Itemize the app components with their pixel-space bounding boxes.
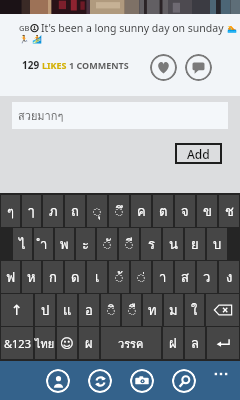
staticText: ง (226, 267, 233, 288)
button[interactable]: ไทย (35, 327, 55, 359)
button[interactable]: Backspace (206, 294, 239, 326)
button[interactable]: Refresh (88, 369, 112, 393)
staticText: ◌ี (125, 234, 133, 255)
button[interactable]: บ (207, 228, 227, 260)
staticText: 🏄 (32, 35, 42, 44)
staticText: ป (41, 300, 50, 321)
staticText: ↑ (11, 302, 23, 318)
staticText: ม (169, 300, 178, 321)
button[interactable]: ↑ (1, 294, 33, 326)
button[interactable]: ◌ุ (87, 195, 107, 227)
staticText: ไ (19, 234, 26, 255)
staticText: เ (95, 267, 100, 288)
button[interactable]: Like (150, 54, 177, 81)
button[interactable]: ผ (79, 327, 99, 359)
button[interactable]: ◌ิ (101, 294, 120, 326)
button[interactable]: ค (131, 195, 151, 227)
button[interactable]: ใ (185, 294, 204, 326)
button[interactable]: ด (65, 261, 85, 293)
button[interactable]: Camera (130, 369, 154, 393)
staticText: อ (85, 300, 93, 321)
staticText: จ (181, 201, 189, 222)
staticText: ว (203, 267, 211, 288)
staticText: ะ (82, 234, 89, 255)
staticText: ๅ (28, 201, 35, 222)
button[interactable]: ม (164, 294, 183, 326)
button[interactable]: เ (87, 261, 107, 293)
staticText: 🏃 (19, 35, 29, 44)
button[interactable]: Search (172, 369, 196, 393)
button[interactable]: น (163, 228, 183, 260)
button[interactable]: ท (143, 294, 162, 326)
button[interactable]: ต (153, 195, 173, 227)
button[interactable]: ๅ (22, 195, 41, 227)
button[interactable]: Comment (185, 54, 212, 81)
button[interactable]: ไ (13, 228, 32, 260)
staticText: ห (27, 267, 36, 288)
button[interactable]: ำ (34, 228, 53, 260)
button[interactable]: จ (175, 195, 195, 227)
staticText: วรรค (118, 335, 144, 352)
staticText: ใ (191, 300, 198, 321)
button[interactable]: ◌้ (109, 261, 129, 293)
button[interactable]: ก (43, 261, 63, 293)
staticText: ☺ (60, 336, 74, 351)
button[interactable]: สวยมากๆ (12, 102, 228, 129)
staticText: ท (148, 300, 157, 321)
button[interactable]: ะ (76, 228, 95, 260)
staticText: ต (159, 201, 168, 222)
button[interactable]: Enter (207, 327, 239, 359)
button[interactable]: ◌ั (97, 228, 117, 260)
button[interactable]: พ (55, 228, 74, 260)
button[interactable]: ย (185, 228, 205, 260)
staticText: ◌่ (137, 267, 145, 288)
button[interactable]: อ (79, 294, 99, 326)
button[interactable]: &123 (1, 327, 33, 359)
button[interactable]: ☺ (57, 327, 77, 359)
staticText: ร (148, 234, 155, 255)
button[interactable]: ถ (65, 195, 85, 227)
button[interactable]: ช (219, 195, 239, 227)
staticText: บ (213, 234, 222, 255)
button[interactable]: ป (35, 294, 55, 326)
button[interactable]: ล (185, 327, 205, 359)
button[interactable]: ข (197, 195, 217, 227)
button[interactable]: า (153, 261, 173, 293)
other: Backspace (214, 304, 232, 316)
staticText: ผ (85, 333, 93, 354)
button[interactable]: ส (175, 261, 195, 293)
staticText: It's been a long sunny day on sunday (41, 21, 224, 35)
staticText: พ (60, 234, 69, 255)
staticText: ล (191, 333, 199, 354)
button[interactable]: ง (219, 261, 239, 293)
button[interactable]: ◌ี (119, 228, 139, 260)
button[interactable]: ภ (43, 195, 63, 227)
button[interactable]: ฟ (1, 261, 20, 293)
other: Enter (215, 337, 231, 349)
button[interactable]: More (212, 365, 230, 383)
staticText: ก (49, 267, 57, 288)
staticText: ๆ (7, 201, 14, 222)
button[interactable]: ห (22, 261, 41, 293)
button[interactable]: ร (141, 228, 161, 260)
staticText: น (169, 234, 178, 255)
button[interactable]: ฝ (163, 327, 183, 359)
staticText: ฟ (6, 267, 16, 288)
button[interactable]: ๆ (1, 195, 20, 227)
staticText: า (159, 267, 167, 288)
button[interactable]: Add (175, 143, 222, 164)
staticText: ค (137, 201, 146, 222)
button[interactable]: แ (57, 294, 77, 326)
staticText: ภ (49, 201, 58, 222)
button[interactable]: ว (197, 261, 217, 293)
staticText: ด (71, 267, 80, 288)
button[interactable]: ◌ึ (109, 195, 129, 227)
button[interactable]: ◌ื (122, 294, 141, 326)
staticText: ◌ั (103, 234, 111, 255)
button[interactable]: Profile (46, 369, 70, 393)
button[interactable]: ◌่ (131, 261, 151, 293)
staticText: ไทย (35, 335, 55, 352)
staticText: ฝ (169, 333, 177, 354)
staticText: ◌ุ (93, 201, 101, 222)
button[interactable]: วรรค (101, 327, 161, 359)
